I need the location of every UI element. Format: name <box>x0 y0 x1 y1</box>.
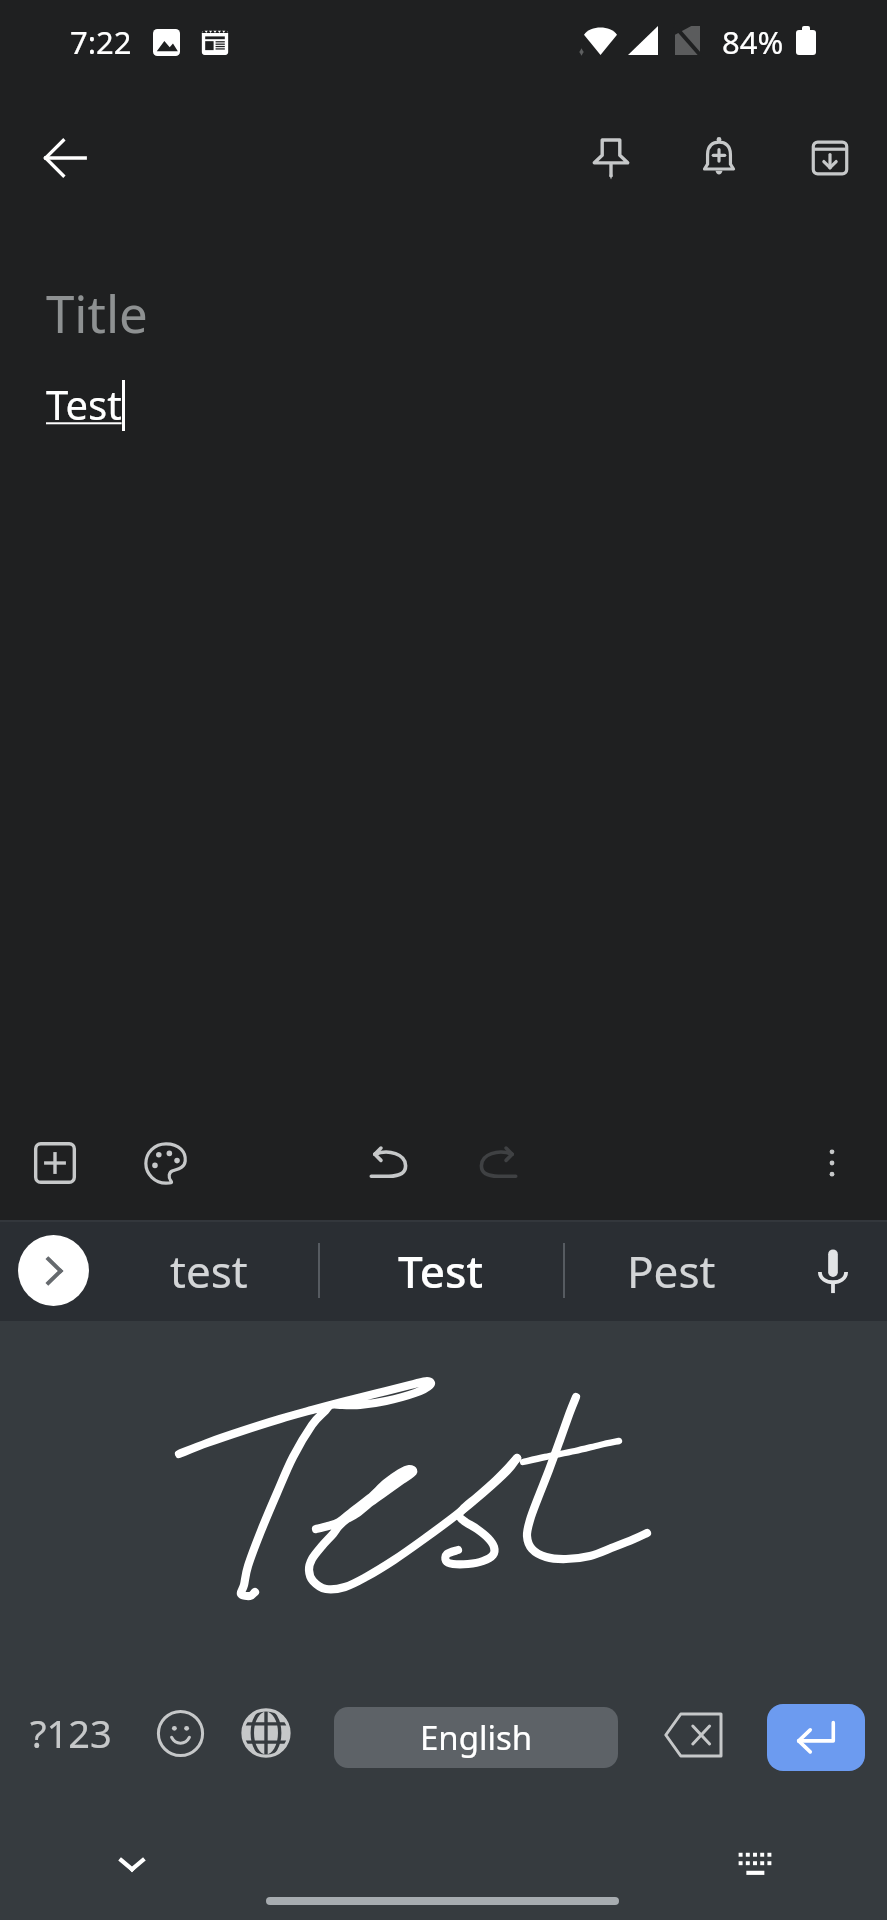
button[interactable]: Emoji <box>137 1690 223 1776</box>
button[interactable]: Add <box>12 1120 98 1206</box>
button[interactable]: Archive <box>787 115 873 201</box>
button[interactable]: Change language <box>223 1690 309 1776</box>
button[interactable]: More options <box>789 1120 875 1206</box>
button[interactable]: English <box>334 1707 618 1768</box>
staticText: Test <box>46 377 122 431</box>
button[interactable]: ?123 <box>11 1693 131 1773</box>
button[interactable]: Add reminder <box>676 115 762 201</box>
staticText: test <box>170 1241 248 1301</box>
staticText: Title <box>46 278 148 347</box>
button[interactable]: Undo <box>345 1120 431 1206</box>
staticText: Pest <box>627 1241 716 1301</box>
button[interactable]: Hide keyboard <box>101 1834 163 1896</box>
staticText: ?123 <box>30 1707 112 1759</box>
staticText: English <box>420 1715 533 1760</box>
button[interactable]: Expand suggestions <box>18 1235 89 1306</box>
button[interactable]: Voice input <box>792 1230 874 1312</box>
staticText: Test <box>398 1241 484 1301</box>
staticText: 7:22 <box>70 21 132 63</box>
button[interactable]: Pest <box>561 1220 781 1321</box>
button[interactable]: Redo <box>456 1120 542 1206</box>
button[interactable]: Backspace <box>651 1692 737 1778</box>
button[interactable]: test <box>99 1220 319 1321</box>
button[interactable]: Pin <box>568 115 654 201</box>
button[interactable]: Color palette <box>123 1120 209 1206</box>
button[interactable]: Test <box>331 1220 551 1321</box>
button[interactable]: Switch keyboard <box>724 1834 786 1896</box>
staticText: 84% <box>722 21 784 63</box>
button[interactable]: Enter <box>767 1704 865 1771</box>
button[interactable]: Back <box>22 115 108 201</box>
